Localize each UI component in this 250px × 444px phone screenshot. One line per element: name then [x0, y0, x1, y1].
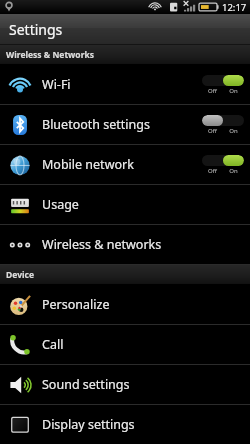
button[interactable]: Toggle on — [202, 155, 244, 166]
staticText: Bluetooth settings — [42, 116, 150, 133]
staticText: Display settings — [42, 416, 135, 433]
staticText: On — [223, 87, 244, 95]
button[interactable]: Wireless & networks — [0, 225, 250, 264]
staticText: Wi-Fi — [42, 76, 71, 93]
staticText: Off — [202, 87, 223, 95]
staticText: Off — [202, 167, 223, 175]
button[interactable]: Personalize — [0, 285, 250, 324]
staticText: 12:17 — [222, 1, 247, 14]
staticText: Settings — [9, 20, 63, 39]
staticText: Device — [6, 269, 34, 281]
button[interactable]: Call — [0, 325, 250, 364]
staticText: Usage — [42, 196, 79, 213]
staticText: On — [223, 127, 244, 135]
staticText: Off — [202, 127, 223, 135]
button[interactable]: Wi-Fi — [0, 65, 250, 104]
button[interactable]: Display settings — [0, 405, 250, 444]
button[interactable]: Toggle on — [202, 75, 244, 86]
button[interactable]: Bluetooth settings — [0, 105, 250, 144]
button[interactable]: Mobile network — [0, 145, 250, 184]
staticText: Wireless & Networks — [6, 49, 95, 61]
staticText: Sound settings — [42, 376, 130, 393]
button[interactable]: Toggle off — [202, 115, 244, 126]
button[interactable]: Usage — [0, 185, 250, 224]
staticText: Personalize — [42, 296, 110, 313]
staticText: Call — [42, 336, 64, 353]
staticText: Mobile network — [42, 156, 134, 173]
staticText: Wireless & networks — [42, 236, 162, 253]
staticText: On — [223, 167, 244, 175]
button[interactable]: Sound settings — [0, 365, 250, 404]
